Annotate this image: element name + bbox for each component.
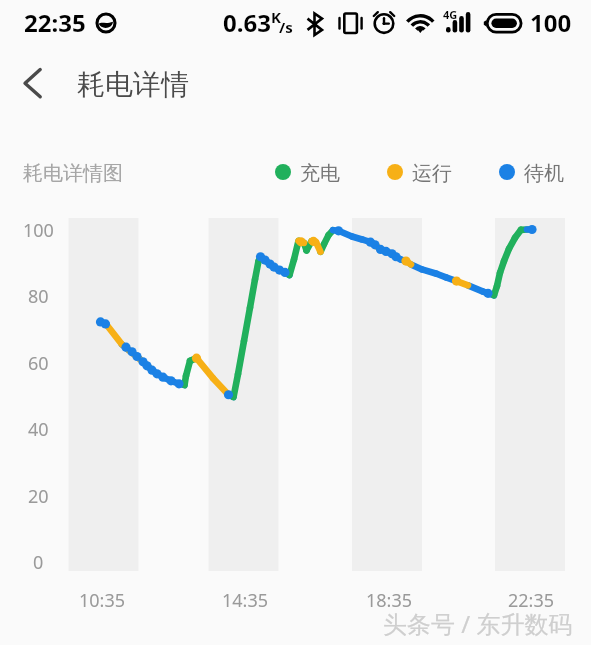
staticText: 0 — [33, 550, 44, 575]
staticText: 22:35 — [508, 588, 555, 613]
staticText: 14:35 — [222, 588, 269, 613]
staticText: 运行 — [412, 161, 452, 186]
staticText: 耗电详情图 — [23, 161, 123, 186]
staticText: 40 — [28, 417, 49, 442]
staticText: 充电 — [300, 161, 340, 186]
button[interactable]: Back — [8, 57, 58, 107]
staticText: 22:35 — [24, 6, 86, 39]
staticText: 10:35 — [79, 588, 126, 613]
staticText: 待机 — [524, 161, 564, 186]
staticText: 头条号 / 东升数码 — [383, 607, 573, 640]
staticText: 100 — [23, 218, 54, 243]
staticText: K — [271, 7, 281, 27]
staticText: /s — [279, 17, 293, 37]
staticText: 耗电详情 — [77, 67, 189, 102]
staticText: 18:35 — [366, 588, 413, 613]
staticText: 60 — [28, 351, 49, 376]
staticText: 80 — [28, 284, 49, 309]
staticText: 0.63 — [223, 6, 271, 39]
staticText: 4G — [443, 7, 458, 22]
staticText: 20 — [28, 484, 49, 509]
staticText: 100 — [530, 6, 572, 39]
